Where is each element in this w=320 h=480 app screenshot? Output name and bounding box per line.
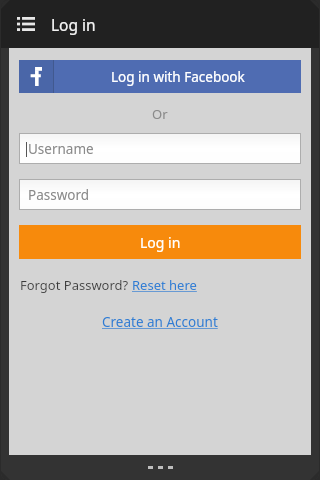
staticText: Or: [152, 105, 168, 123]
button[interactable]: Create an Account: [102, 313, 218, 331]
staticText: Create an Account: [102, 313, 218, 331]
button[interactable]: Log in with Facebook: [19, 60, 301, 93]
button[interactable]: Open navigation menu: [13, 11, 39, 37]
staticText: Forgot Password?: [20, 276, 132, 294]
staticText: Password: [28, 186, 90, 204]
staticText: Log in with Facebook: [111, 68, 245, 86]
button[interactable]: Password: [19, 179, 301, 210]
button[interactable]: Username: [19, 133, 301, 164]
staticText: Log in: [51, 14, 96, 35]
staticText: Log in: [140, 233, 181, 252]
staticText: Username: [28, 140, 94, 158]
staticText: Reset here: [132, 276, 197, 294]
button[interactable]: Reset here: [132, 276, 197, 294]
button[interactable]: Log in: [19, 225, 301, 259]
button[interactable]: More options: [144, 462, 177, 473]
